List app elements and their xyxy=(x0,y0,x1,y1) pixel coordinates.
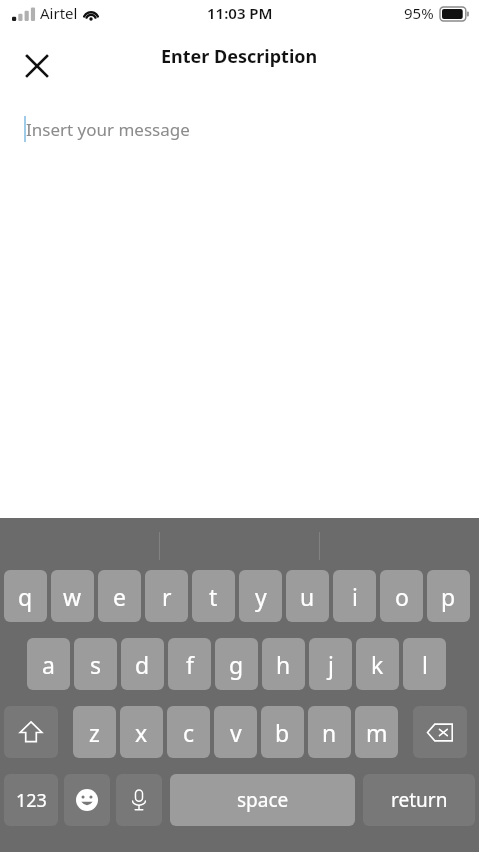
button[interactable]: g xyxy=(215,638,258,690)
button[interactable]: f xyxy=(168,638,211,690)
button[interactable]: return xyxy=(363,774,475,826)
button[interactable]: d xyxy=(121,638,164,690)
staticText: e xyxy=(113,581,126,612)
button[interactable]: s xyxy=(74,638,117,690)
staticText: i xyxy=(352,581,358,612)
button[interactable]: w xyxy=(51,570,94,622)
button[interactable]: Insert your message xyxy=(0,94,479,164)
staticText: r xyxy=(162,581,172,612)
button[interactable]: 123 xyxy=(4,774,58,826)
button[interactable]: o xyxy=(380,570,423,622)
staticText: b xyxy=(275,717,290,748)
button[interactable]: t xyxy=(192,570,235,622)
button[interactable]: space xyxy=(170,774,355,826)
button[interactable]: m xyxy=(355,706,398,758)
button[interactable]: r xyxy=(145,570,188,622)
staticText: 11:03 PM xyxy=(207,3,273,23)
button[interactable]: Shift xyxy=(4,706,58,758)
staticText: Airtel xyxy=(40,3,78,23)
staticText: w xyxy=(63,581,82,612)
staticText: 123 xyxy=(16,788,47,813)
staticText: 95% xyxy=(404,3,434,23)
staticText: c xyxy=(183,717,195,748)
staticText: Insert your message xyxy=(26,118,190,141)
staticText: space xyxy=(237,787,289,813)
button[interactable]: Emoji xyxy=(64,774,110,826)
button[interactable]: x xyxy=(120,706,163,758)
staticText: t xyxy=(209,581,218,612)
staticText: d xyxy=(135,649,150,680)
staticText: n xyxy=(322,717,337,748)
staticText: u xyxy=(300,581,315,612)
staticText: h xyxy=(276,649,291,680)
staticText: f xyxy=(186,649,194,680)
button[interactable]: a xyxy=(27,638,70,690)
button[interactable]: q xyxy=(4,570,47,622)
button[interactable]: u xyxy=(286,570,329,622)
staticText: return xyxy=(391,787,448,813)
staticText: x xyxy=(135,717,148,748)
button[interactable]: v xyxy=(214,706,257,758)
button[interactable]: k xyxy=(356,638,399,690)
staticText: v xyxy=(230,717,242,748)
button[interactable]: c xyxy=(167,706,210,758)
staticText: a xyxy=(42,649,55,680)
button[interactable]: l xyxy=(403,638,446,690)
staticText: y xyxy=(255,581,267,612)
staticText: p xyxy=(441,581,456,612)
button[interactable]: j xyxy=(309,638,352,690)
button[interactable]: z xyxy=(73,706,116,758)
staticText: l xyxy=(422,649,428,680)
button[interactable]: e xyxy=(98,570,141,622)
button[interactable]: Backspace xyxy=(413,706,467,758)
staticText: Enter Description xyxy=(161,44,318,69)
staticText: z xyxy=(89,717,100,748)
button[interactable]: b xyxy=(261,706,304,758)
staticText: m xyxy=(366,717,388,748)
staticText: o xyxy=(395,581,409,612)
button[interactable]: n xyxy=(308,706,351,758)
staticText: q xyxy=(18,581,33,612)
button[interactable]: Dictate xyxy=(116,774,162,826)
staticText: j xyxy=(328,649,334,680)
button[interactable]: y xyxy=(239,570,282,622)
staticText: k xyxy=(371,649,384,680)
staticText: s xyxy=(90,649,102,680)
staticText: g xyxy=(229,649,244,680)
button[interactable]: h xyxy=(262,638,305,690)
button[interactable]: i xyxy=(333,570,376,622)
button[interactable]: p xyxy=(427,570,470,622)
button[interactable]: Close xyxy=(14,43,60,89)
